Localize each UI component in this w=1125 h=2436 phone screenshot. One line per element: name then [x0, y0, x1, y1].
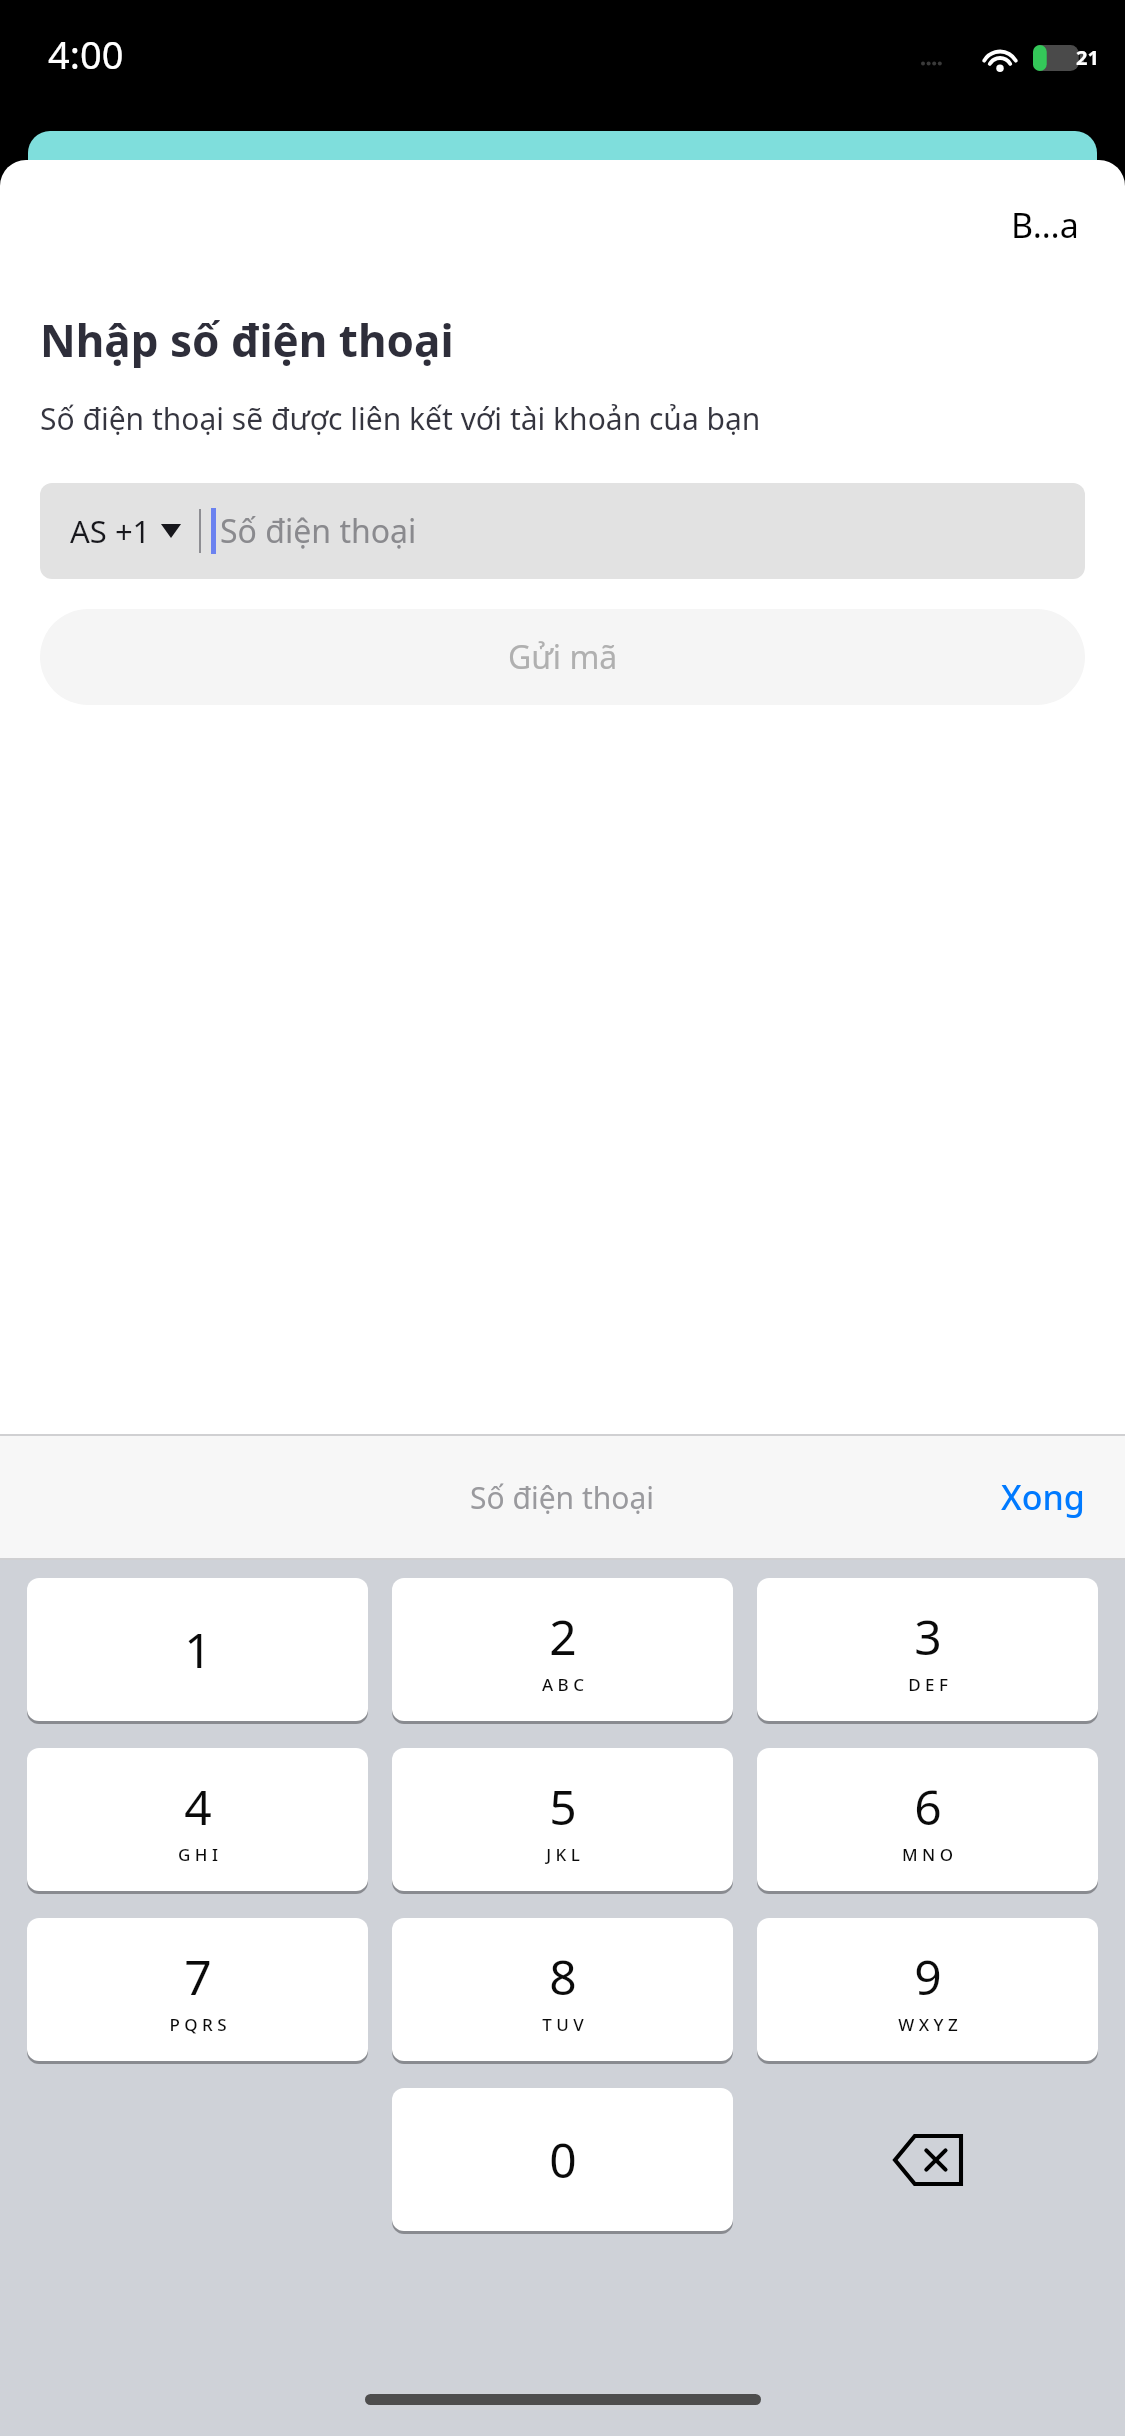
staticText: 7 — [184, 1944, 212, 2009]
button[interactable]: AS +1 — [70, 510, 181, 552]
staticText: D E F — [908, 1673, 948, 1696]
button[interactable]: 0 — [392, 2088, 733, 2231]
staticText: AS +1 — [70, 510, 151, 552]
staticText: P Q R S — [169, 2013, 227, 2036]
staticText: 4 — [184, 1774, 212, 1839]
button[interactable]: AS +1 — [40, 483, 1085, 579]
staticText: 1 — [184, 1617, 212, 1682]
button[interactable]: 1 — [27, 1578, 368, 1721]
button[interactable]: 3 — [757, 1578, 1098, 1721]
button[interactable]: Xong — [961, 1460, 1125, 1534]
staticText: Số điện thoại sẽ được liên kết với tài k… — [40, 398, 761, 439]
button[interactable]: B…a — [1005, 196, 1085, 254]
staticText: Xong — [1001, 1474, 1085, 1520]
staticText: J K L — [546, 1843, 580, 1866]
staticText: A B C — [542, 1673, 584, 1696]
staticText: Gửi mã — [508, 635, 618, 679]
staticText: W X Y Z — [898, 2013, 958, 2036]
staticText: Nhập số điện thoại — [40, 310, 454, 370]
staticText: 21 — [1076, 44, 1099, 71]
staticText: B…a — [1011, 202, 1079, 248]
staticText: Số điện thoại — [220, 509, 417, 553]
button[interactable]: 6 — [757, 1748, 1098, 1891]
button[interactable]: 7 — [27, 1918, 368, 2061]
button[interactable]: Gửi mã — [40, 609, 1085, 705]
staticText: 3 — [914, 1604, 942, 1669]
button[interactable]: Delete — [745, 2088, 1110, 2231]
staticText: Số điện thoại — [470, 1477, 655, 1518]
staticText: 6 — [914, 1774, 942, 1839]
staticText: T U V — [542, 2013, 584, 2036]
staticText: 4:00 — [48, 28, 124, 80]
staticText: G H I — [178, 1843, 218, 1866]
button[interactable]: 4 — [27, 1748, 368, 1891]
button[interactable]: 9 — [757, 1918, 1098, 2061]
staticText: 2 — [549, 1604, 577, 1669]
staticText: 5 — [549, 1774, 577, 1839]
staticText: 8 — [549, 1944, 577, 2009]
button[interactable]: 2 — [392, 1578, 733, 1721]
button[interactable]: 8 — [392, 1918, 733, 2061]
staticText: 9 — [914, 1944, 942, 2009]
staticText: 0 — [549, 2127, 577, 2192]
staticText: M N O — [902, 1843, 953, 1866]
button[interactable]: 5 — [392, 1748, 733, 1891]
